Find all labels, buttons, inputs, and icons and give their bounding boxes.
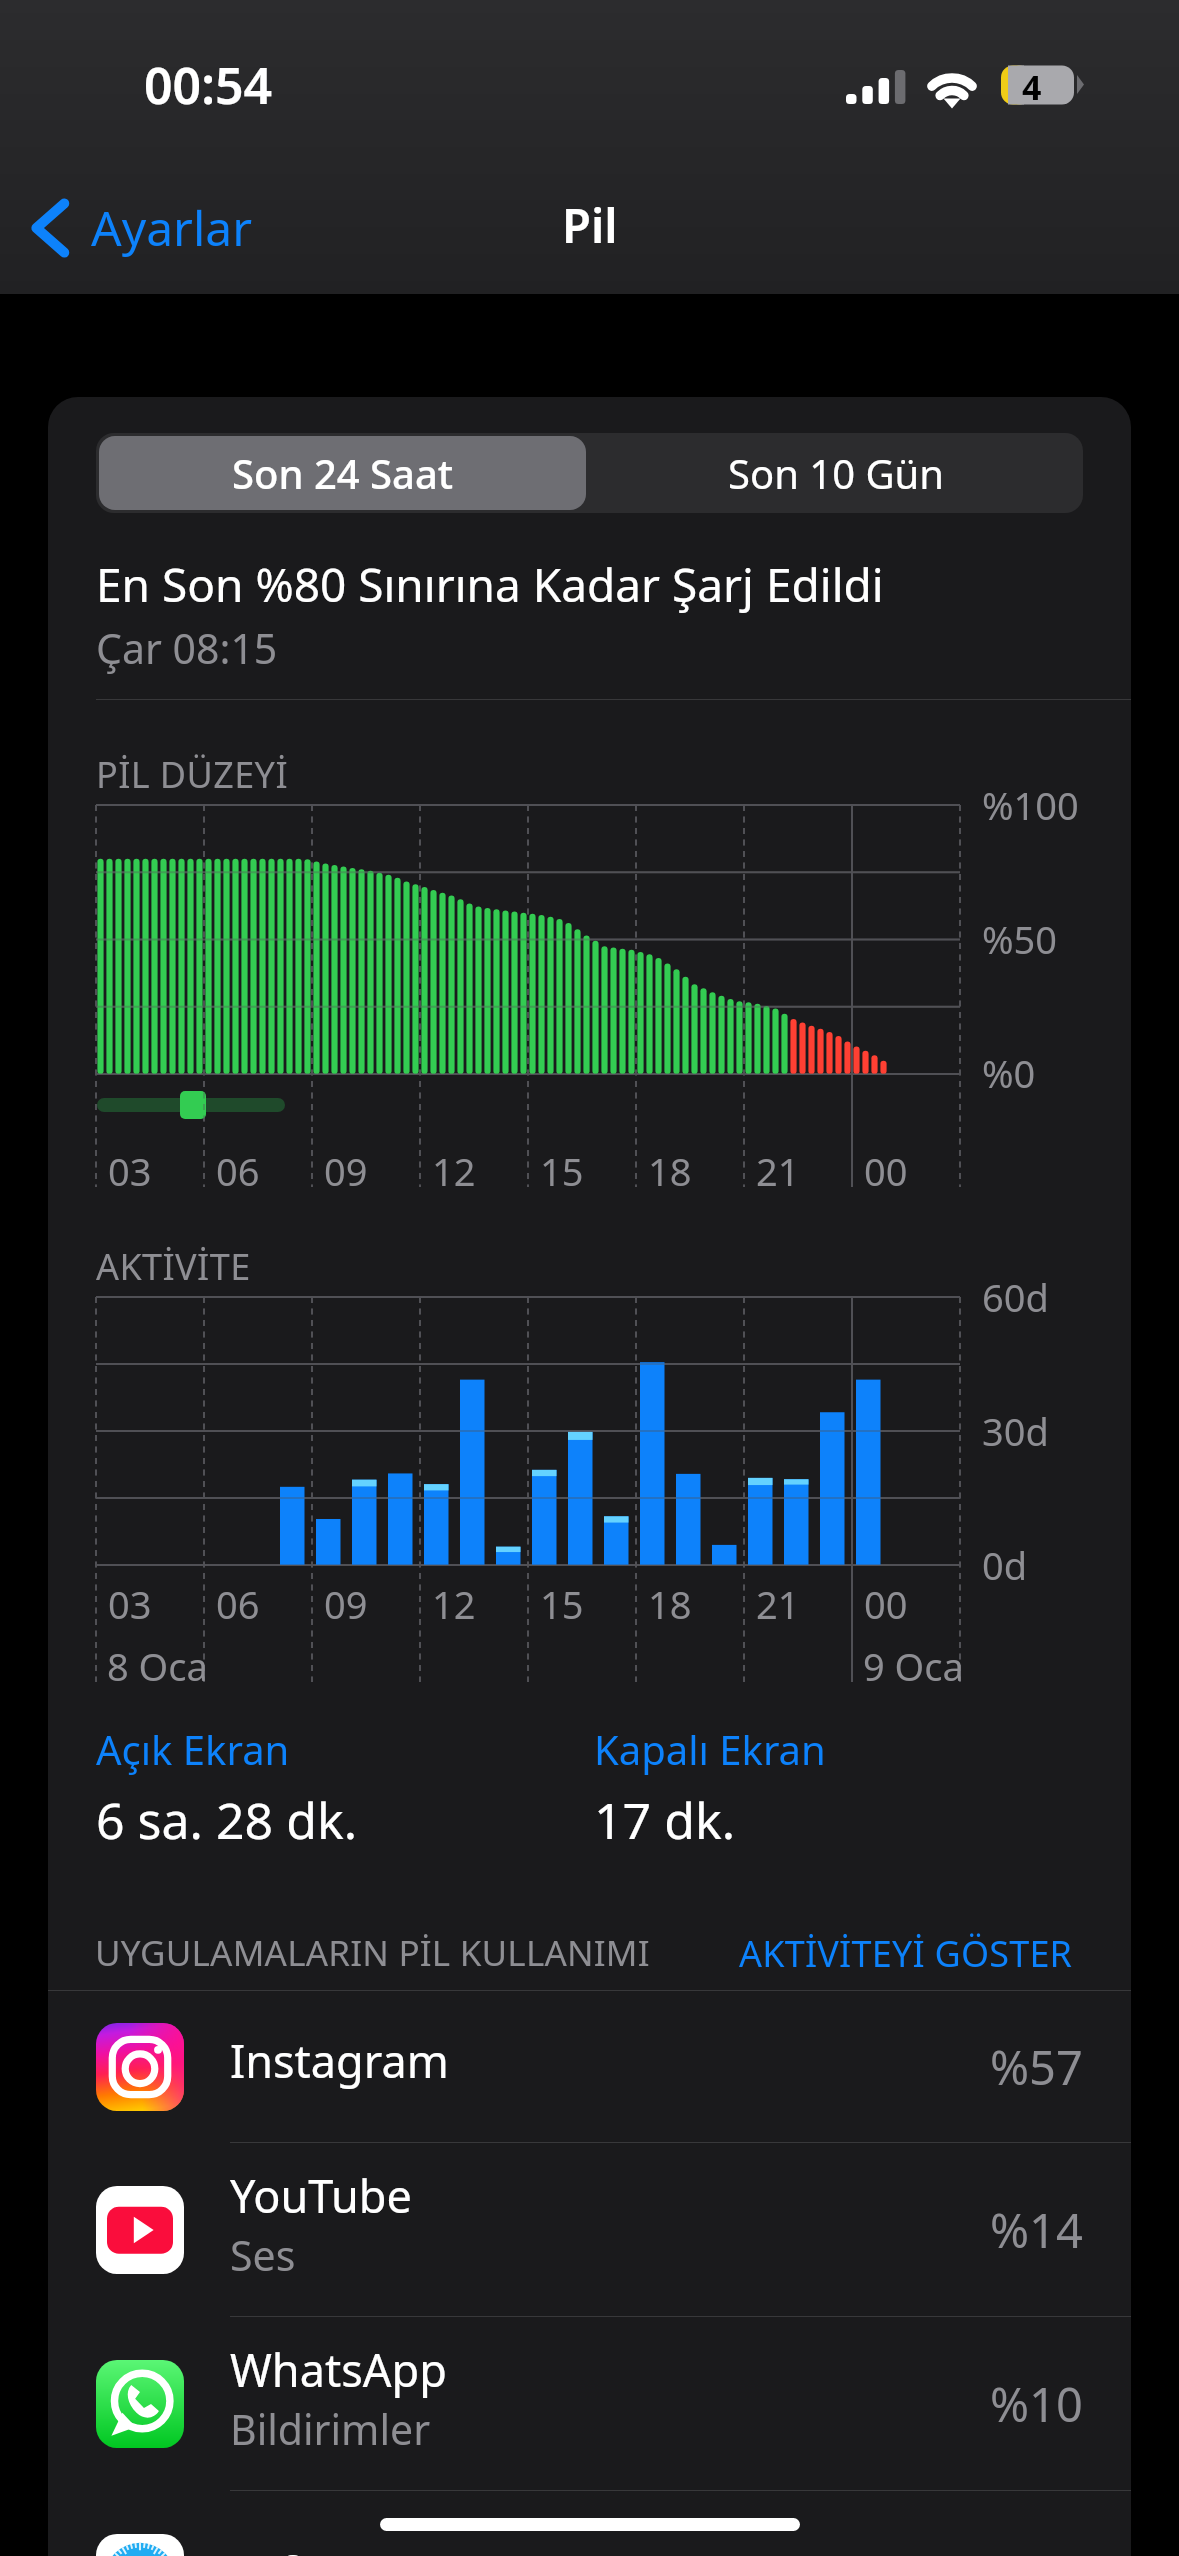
staticText: 18 [648, 1578, 692, 1630]
staticText: AKTİVİTE [96, 1242, 251, 1291]
other: Status icons [840, 60, 1100, 120]
staticText: Açık Ekran [96, 1722, 290, 1776]
staticText: %57 [990, 2035, 1083, 2099]
staticText: 00:54 [144, 51, 273, 119]
staticText: 06 [216, 1578, 260, 1630]
staticText: UYGULAMALARIN PİL KULLANIMI [95, 1929, 650, 1977]
staticText: %14 [990, 2198, 1083, 2262]
staticText: 09 [324, 1145, 368, 1197]
staticText: 21 [756, 1578, 800, 1630]
button[interactable]: Instagram [48, 1990, 1131, 2143]
button[interactable]: Safari [48, 2491, 1131, 2556]
staticText: Son 24 Saat [232, 446, 454, 500]
staticText: 8 Oca [107, 1640, 208, 1692]
staticText: YouTube [230, 2165, 412, 2226]
staticText: 60d [982, 1271, 1049, 1323]
staticText: Son 10 Gün [728, 446, 944, 500]
staticText: 21 [756, 1145, 800, 1197]
staticText: Pil [562, 193, 618, 257]
button[interactable]: AKTİVİTEYİ GÖSTER [739, 1929, 1073, 1978]
staticText: 18 [648, 1145, 692, 1197]
staticText: Instagram [230, 2030, 449, 2091]
staticText: 30d [982, 1405, 1049, 1457]
staticText: 17 dk. [594, 1786, 736, 1854]
staticText: 06 [216, 1145, 260, 1197]
button[interactable]: Son 10 Gün [589, 433, 1083, 513]
staticText: 00 [864, 1145, 908, 1197]
staticText: 03 [108, 1578, 152, 1630]
staticText: Ayarlar [91, 195, 253, 260]
staticText: %100 [982, 779, 1079, 831]
staticText: %0 [982, 1047, 1036, 1099]
staticText: Kapalı Ekran [594, 1722, 826, 1776]
button[interactable]: YouTube [48, 2143, 1131, 2317]
staticText: 6 sa. 28 dk. [96, 1786, 358, 1854]
button[interactable]: WhatsApp [48, 2317, 1131, 2491]
staticText: 12 [432, 1578, 476, 1630]
staticText: 9 Oca [863, 1640, 964, 1692]
staticText: 15 [540, 1578, 584, 1630]
staticText: %10 [990, 2372, 1083, 2436]
staticText: 00 [864, 1578, 908, 1630]
staticText: 09 [324, 1578, 368, 1630]
staticText: Bildirimler [230, 2401, 431, 2457]
staticText: WhatsApp [230, 2339, 447, 2400]
staticText: Safari [230, 2542, 351, 2556]
staticText: Ses [230, 2227, 296, 2283]
staticText: 0d [982, 1539, 1028, 1591]
staticText: En Son %80 Sınırına Kadar Şarj Edildi [96, 553, 884, 616]
staticText: 15 [540, 1145, 584, 1197]
staticText: 12 [432, 1145, 476, 1197]
staticText: 4 [1022, 64, 1042, 110]
staticText: PİL DÜZEYİ [96, 750, 288, 799]
staticText: 03 [108, 1145, 152, 1197]
staticText: Çar 08:15 [96, 620, 278, 676]
button[interactable]: Son 24 Saat [99, 436, 586, 510]
button[interactable]: Ayarlar [29, 195, 253, 260]
staticText: AKTİVİTEYİ GÖSTER [739, 1929, 1073, 1978]
staticText: %50 [982, 913, 1058, 965]
